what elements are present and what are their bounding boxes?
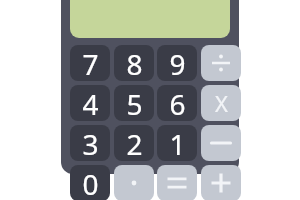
staticText: X bbox=[215, 88, 228, 118]
button[interactable]: Plus bbox=[201, 165, 241, 200]
button[interactable]: Divide bbox=[201, 45, 241, 81]
button[interactable]: 0 bbox=[70, 165, 110, 200]
staticText: 5 bbox=[126, 85, 143, 121]
staticText: 9 bbox=[169, 45, 186, 81]
button[interactable]: 2 bbox=[114, 125, 154, 161]
button[interactable]: Minus bbox=[201, 125, 241, 161]
button[interactable]: 6 bbox=[157, 85, 197, 121]
staticText: 3 bbox=[82, 125, 99, 161]
button[interactable]: Equals bbox=[157, 165, 197, 200]
staticText: 1 bbox=[169, 125, 186, 161]
button[interactable]: Decimal point bbox=[114, 165, 154, 200]
staticText: 0 bbox=[82, 165, 99, 200]
button[interactable]: Display bbox=[70, 0, 230, 38]
button[interactable]: 1 bbox=[157, 125, 197, 161]
button[interactable]: 9 bbox=[157, 45, 197, 81]
staticText: 4 bbox=[82, 85, 99, 121]
button[interactable]: 4 bbox=[70, 85, 110, 121]
button[interactable]: 8 bbox=[114, 45, 154, 81]
button[interactable]: 5 bbox=[114, 85, 154, 121]
button[interactable]: Multiply bbox=[201, 85, 241, 121]
staticText: 2 bbox=[126, 125, 143, 161]
staticText: 8 bbox=[126, 45, 143, 81]
staticText: 7 bbox=[82, 45, 99, 81]
button[interactable]: 7 bbox=[70, 45, 110, 81]
staticText: 6 bbox=[169, 85, 186, 121]
button[interactable]: 3 bbox=[70, 125, 110, 161]
